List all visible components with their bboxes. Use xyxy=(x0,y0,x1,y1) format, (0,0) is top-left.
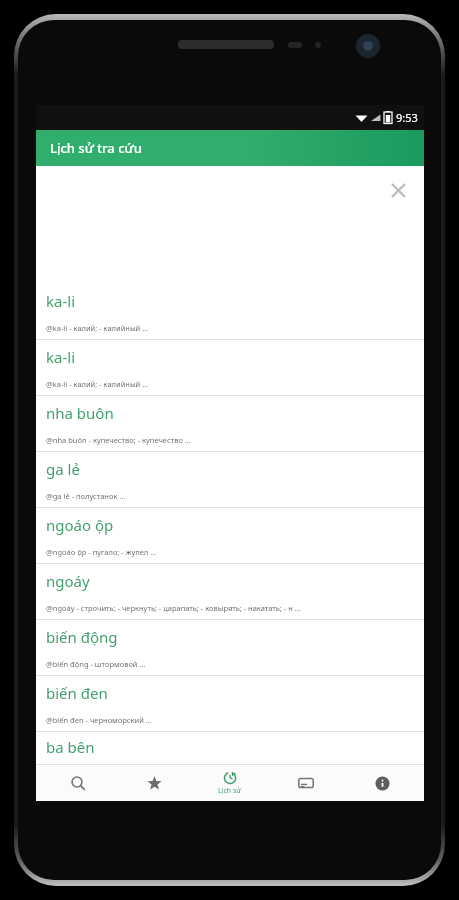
staticText: Lịch sử tra cứu xyxy=(50,139,142,157)
button[interactable]: biến đen xyxy=(36,676,424,732)
staticText: ngoáo ộp xyxy=(46,515,114,535)
button[interactable]: ka-li xyxy=(36,284,424,340)
staticText: @ngoáo ộp - пугало; - жупел ... xyxy=(46,547,157,557)
staticText: @ka-li - калий; - калийный ... xyxy=(46,379,149,389)
staticText: @nha buôn - купечество; - купечество ... xyxy=(46,435,191,445)
button[interactable]: nha buôn xyxy=(36,396,424,452)
button[interactable]: ga lẻ xyxy=(36,452,424,508)
staticText: nha buôn xyxy=(46,403,114,423)
button[interactable]: Search xyxy=(44,765,112,801)
button[interactable]: ka-li xyxy=(36,340,424,396)
staticText: @ga lẻ - полустанок ... xyxy=(46,491,126,501)
button[interactable]: biến động xyxy=(36,620,424,676)
staticText: @biến đen - черноморский ... xyxy=(46,715,152,725)
staticText: Lịch sử xyxy=(218,786,242,796)
button[interactable]: ba bên xyxy=(36,732,424,762)
staticText: ka-li xyxy=(46,347,75,367)
staticText: @ka-li - калий; - калийный ... xyxy=(46,323,149,333)
staticText: 9:53 xyxy=(396,110,418,125)
staticText: ngoáy xyxy=(46,571,90,591)
button[interactable]: Flashcards xyxy=(272,765,340,801)
button[interactable]: About xyxy=(348,765,416,801)
button[interactable]: Lịch sử xyxy=(196,765,264,801)
staticText: @ngoáy - строчить; - черкнуть; - царапат… xyxy=(46,603,301,613)
staticText: biến động xyxy=(46,627,118,647)
button[interactable]: ngoáo ộp xyxy=(36,508,424,564)
button[interactable]: Close xyxy=(384,176,412,204)
button[interactable]: ngoáy xyxy=(36,564,424,620)
staticText: ba bên xyxy=(46,737,95,757)
button[interactable]: Favorites xyxy=(120,765,188,801)
staticText: @biến động - штормовой ... xyxy=(46,659,146,669)
staticText: ka-li xyxy=(46,291,75,311)
staticText: biến đen xyxy=(46,683,108,703)
staticText: ga lẻ xyxy=(46,459,80,479)
